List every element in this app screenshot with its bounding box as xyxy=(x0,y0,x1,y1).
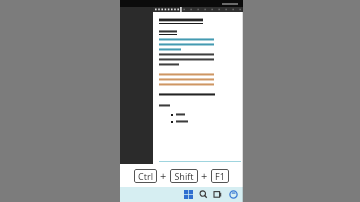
button[interactable]: F1 xyxy=(211,169,229,183)
button[interactable]: Browser xyxy=(229,190,238,199)
button[interactable]: Task view xyxy=(214,190,223,199)
staticText: + xyxy=(201,168,208,183)
button[interactable]: Start menu xyxy=(184,190,193,199)
button[interactable]: Search xyxy=(199,190,208,199)
button[interactable]: Shift xyxy=(170,169,198,183)
staticText: + xyxy=(160,168,167,183)
staticText: F1 xyxy=(215,170,225,182)
button[interactable]: Ctrl xyxy=(134,169,157,183)
staticText: Shift xyxy=(174,170,194,182)
staticText: Ctrl xyxy=(138,170,153,182)
